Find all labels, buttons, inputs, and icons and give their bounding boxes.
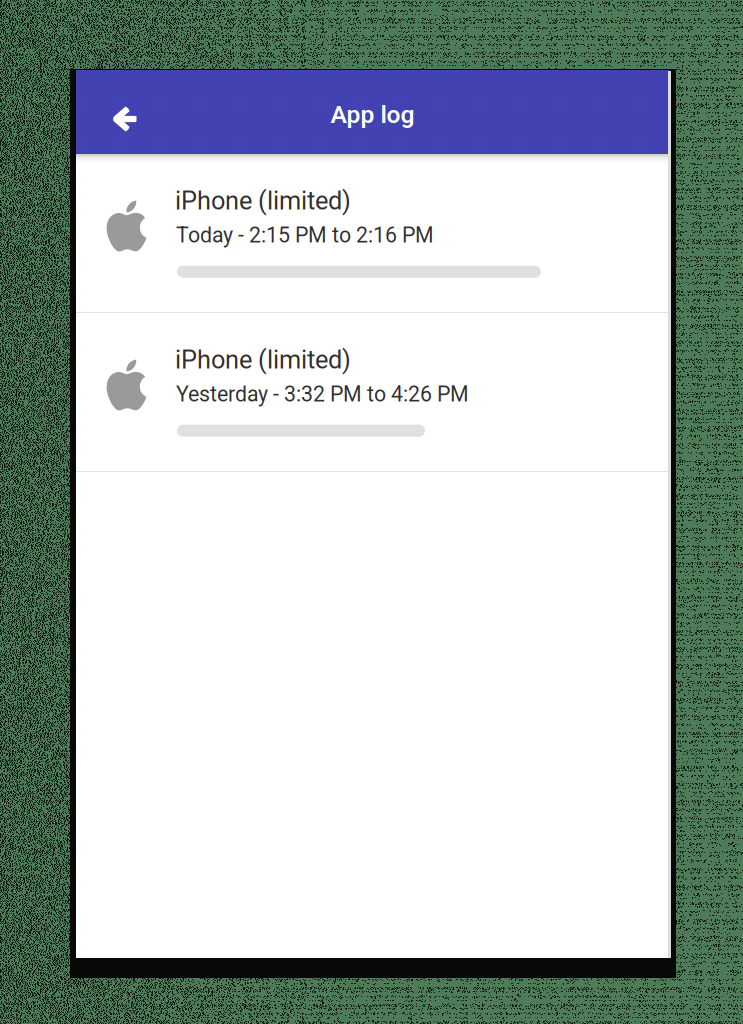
staticText: Yesterday - 3:32 PM to 4:26 PM: [176, 382, 469, 407]
button[interactable]: iPhone (limited): [76, 154, 669, 313]
staticText: iPhone (limited): [175, 186, 351, 216]
staticText: App log: [330, 100, 414, 129]
staticText: iPhone (limited): [175, 345, 351, 375]
button[interactable]: Back: [97, 78, 151, 146]
staticText: Today - 2:15 PM to 2:16 PM: [176, 223, 434, 248]
button[interactable]: iPhone (limited): [76, 313, 669, 472]
